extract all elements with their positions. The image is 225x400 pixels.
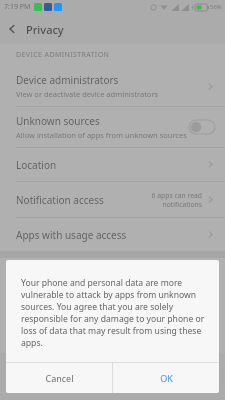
button[interactable]: Unknown sources toggle [189,120,215,134]
staticText: Clear credentials [16,330,215,344]
staticText: 7:19 PM [4,2,31,12]
button[interactable]: Apps with usage access [0,218,225,251]
staticText: OK [160,372,173,384]
staticText: Allow installation of apps from unknown … [16,130,187,140]
staticText: Privacy [26,22,64,37]
button[interactable]: Location [0,148,225,181]
staticText: 6 apps can read notifications [151,191,202,209]
staticText: DEVICE ADMINISTRATION [16,50,110,60]
button[interactable]: OK [113,363,219,393]
button[interactable]: Back [0,17,24,41]
staticText: Device administrators [16,73,119,87]
staticText: Apps with usage access [16,228,206,242]
button[interactable]: Unknown sources [0,107,225,147]
staticText: Cancel [45,372,74,384]
button[interactable]: Clear credentials [0,320,225,353]
staticText: Notification access [16,193,151,207]
button[interactable]: Cancel [6,363,112,393]
staticText: Location [16,158,206,172]
button[interactable]: Notification access [0,182,225,217]
staticText: 56% [210,3,222,11]
staticText: View or deactivate device administrators [16,89,159,99]
staticText: Your phone and personal data are more vu… [21,277,207,349]
staticText: Unknown sources [16,114,100,128]
button[interactable]: Device administrators [0,66,225,106]
